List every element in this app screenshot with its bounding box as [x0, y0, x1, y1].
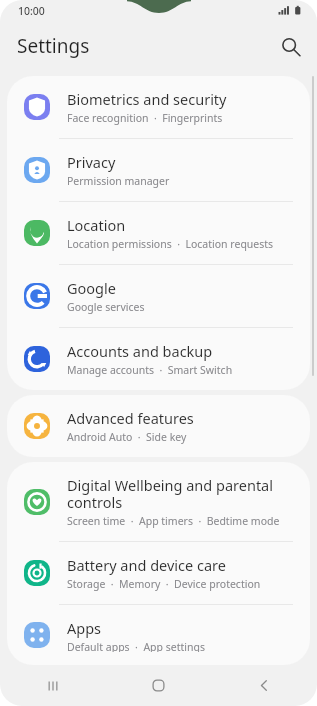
staticText: Advanced features	[67, 408, 194, 428]
staticText: Digital Wellbeing and parental controls	[67, 475, 294, 512]
staticText: Storage · Memory · Device protection	[67, 577, 261, 591]
button[interactable]: Location	[7, 202, 310, 265]
staticText: Privacy	[67, 152, 116, 172]
button[interactable]: Biometrics and security	[7, 76, 310, 139]
staticText: Manage accounts · Smart Switch	[67, 363, 233, 377]
button[interactable]: Recents	[0, 665, 105, 706]
button[interactable]: Home	[105, 665, 211, 706]
staticText: Apps	[67, 618, 102, 638]
staticText: Google	[67, 278, 116, 298]
staticText: Google services	[67, 300, 145, 314]
staticText: Android Auto · Side key	[67, 430, 187, 444]
button[interactable]: Google	[7, 265, 310, 328]
button[interactable]: Apps	[7, 605, 310, 665]
staticText: Location	[67, 215, 126, 235]
button[interactable]: Search	[272, 28, 308, 64]
staticText: Location permissions · Location requests	[67, 237, 274, 251]
staticText: Biometrics and security	[67, 89, 227, 109]
staticText: Default apps · App settings	[67, 640, 205, 652]
staticText: Face recognition · Fingerprints	[67, 111, 223, 125]
staticText: Accounts and backup	[67, 341, 213, 361]
staticText: Settings	[17, 33, 90, 59]
staticText: 10:00	[18, 4, 45, 18]
staticText: Battery and device care	[67, 555, 226, 575]
button[interactable]: Digital Wellbeing and parental controls	[7, 462, 310, 542]
button[interactable]: Privacy	[7, 139, 310, 202]
button[interactable]: Accounts and backup	[7, 328, 310, 390]
button[interactable]: Battery and device care	[7, 542, 310, 605]
staticText: Permission manager	[67, 174, 170, 188]
button[interactable]: Back	[211, 665, 317, 706]
staticText: Screen time · App timers · Bedtime mode	[67, 514, 280, 528]
button[interactable]: Advanced features	[7, 395, 310, 457]
